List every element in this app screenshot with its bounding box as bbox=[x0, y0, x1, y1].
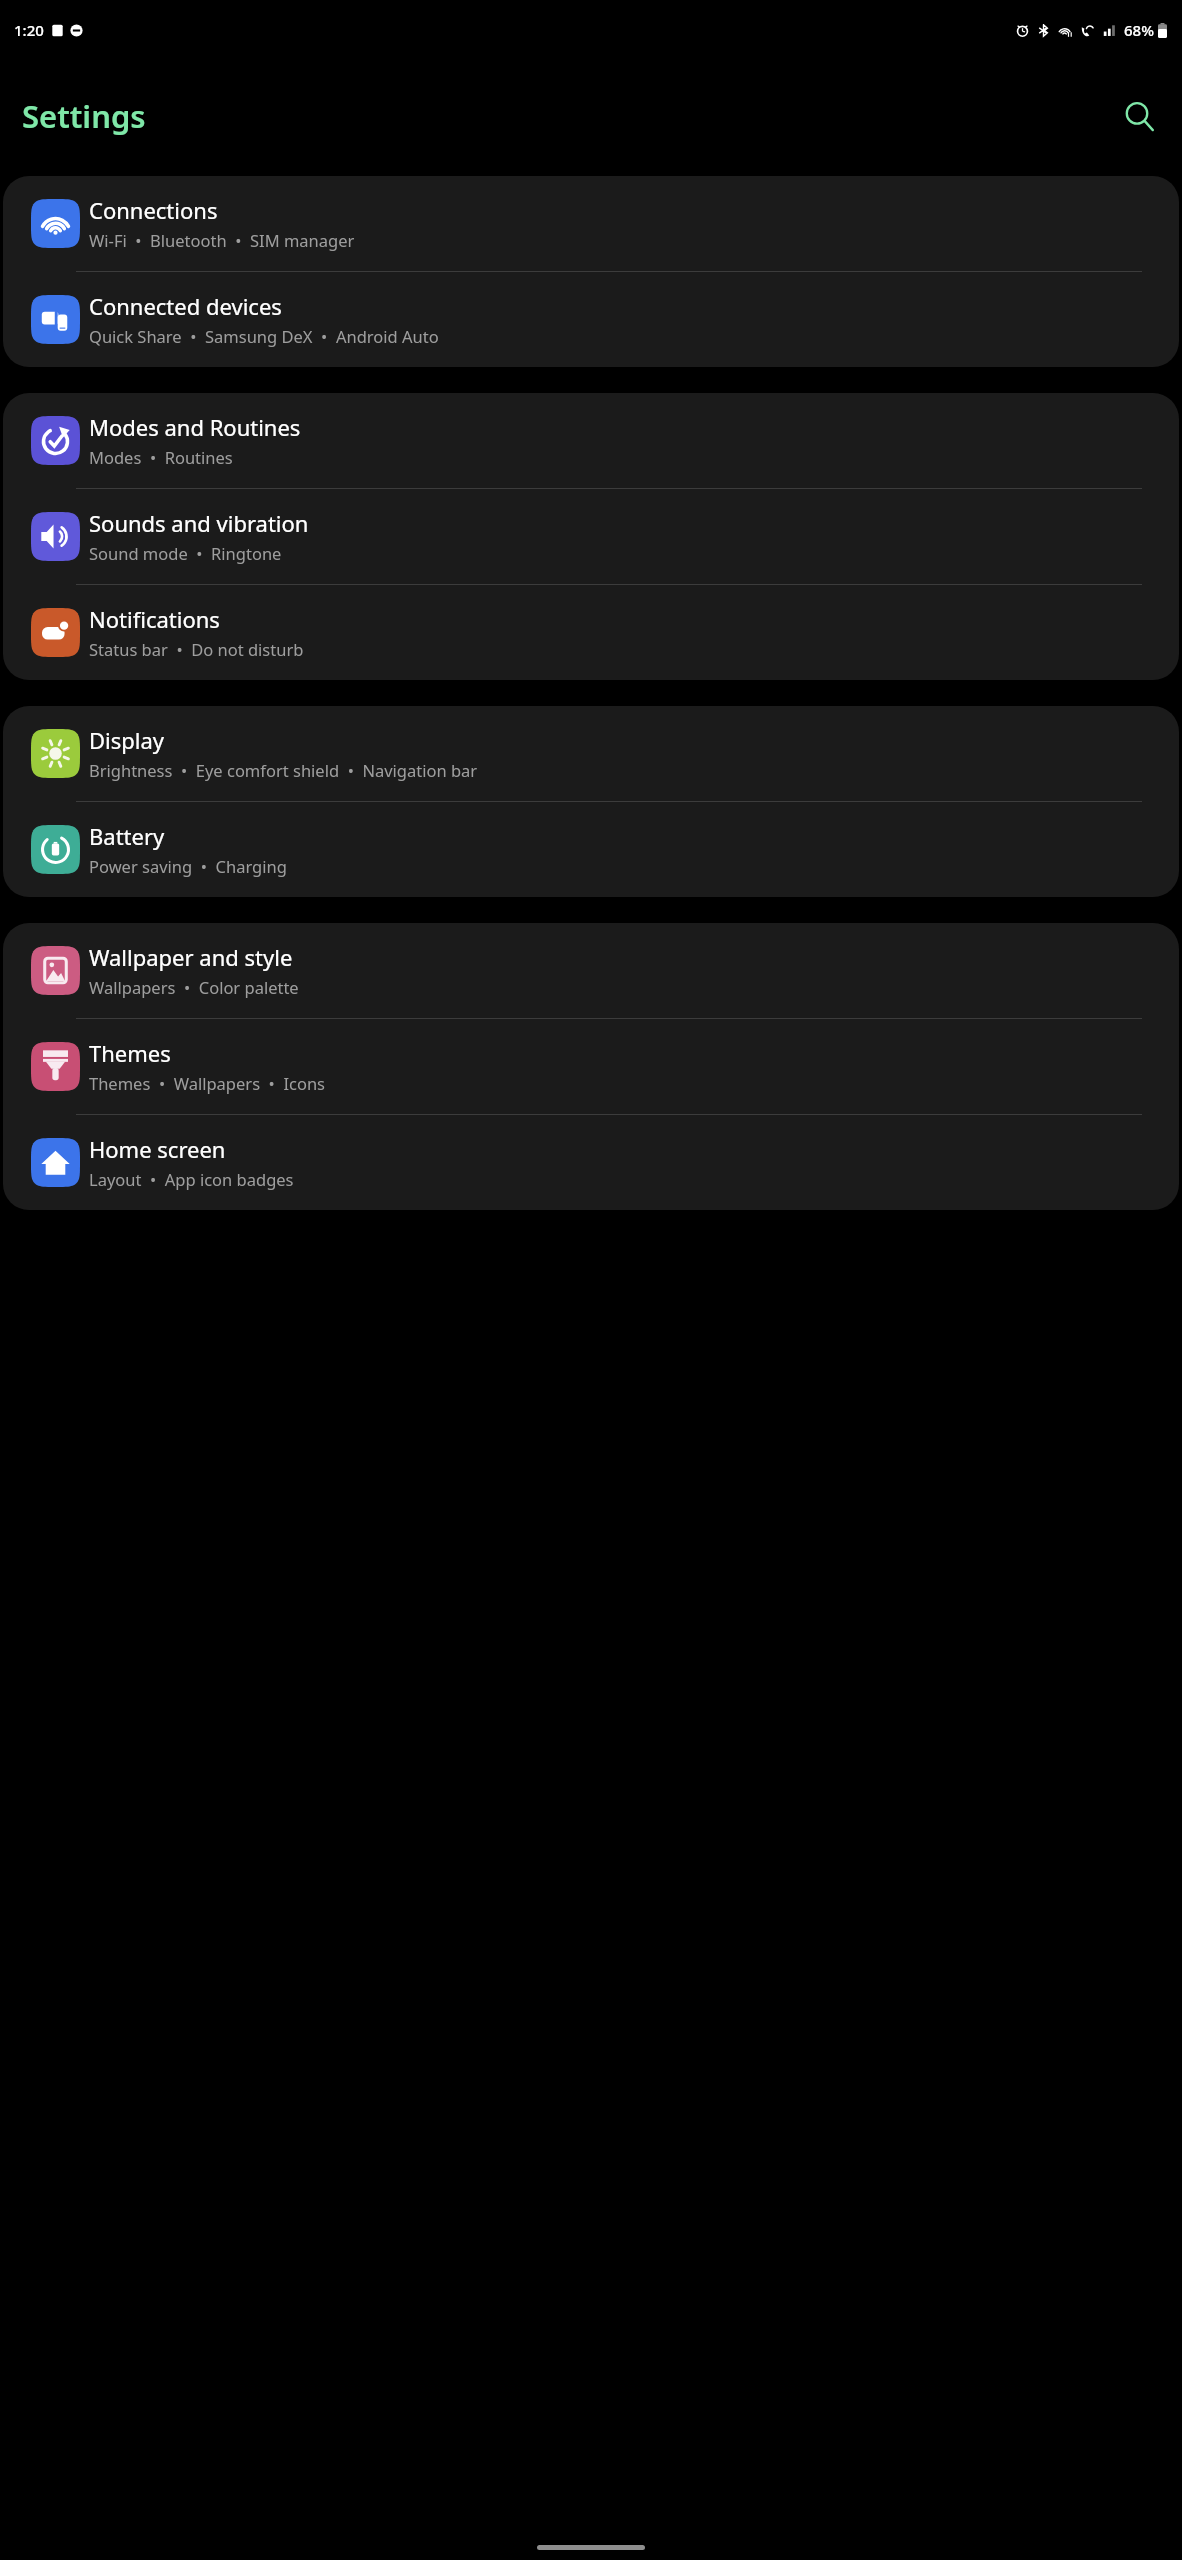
staticText: Themes • Wallpapers • Icons bbox=[89, 1072, 325, 1094]
staticText: Wi-Fi • Bluetooth • SIM manager bbox=[89, 229, 355, 251]
staticText: Home screen bbox=[89, 1134, 226, 1164]
staticText: Layout • App icon badges bbox=[89, 1168, 294, 1190]
staticText: Sounds and vibration bbox=[89, 508, 309, 538]
staticText: Modes • Routines bbox=[89, 446, 233, 468]
button[interactable]: Battery bbox=[3, 802, 1179, 897]
staticText: Settings bbox=[22, 95, 146, 137]
button[interactable]: Sounds and vibration bbox=[3, 489, 1179, 585]
button[interactable]: Connections bbox=[3, 176, 1179, 272]
button[interactable]: Modes and Routines bbox=[3, 393, 1179, 489]
staticText: Display bbox=[89, 725, 165, 755]
staticText: Battery bbox=[89, 821, 165, 851]
button[interactable]: Connected devices bbox=[3, 272, 1179, 367]
button[interactable]: Notifications bbox=[3, 585, 1179, 680]
staticText: Status bar • Do not disturb bbox=[89, 638, 304, 660]
button[interactable]: Wallpaper and style bbox=[3, 923, 1179, 1019]
staticText: Notifications bbox=[89, 604, 220, 634]
staticText: Power saving • Charging bbox=[89, 855, 287, 877]
staticText: Wallpapers • Color palette bbox=[89, 976, 299, 998]
staticText: Themes bbox=[89, 1038, 171, 1068]
button[interactable]: Search bbox=[1116, 93, 1162, 139]
staticText: Connected devices bbox=[89, 291, 282, 321]
button[interactable]: Home screen bbox=[3, 1115, 1179, 1210]
staticText: Quick Share • Samsung DeX • Android Auto bbox=[89, 325, 439, 347]
staticText: 68% bbox=[1124, 20, 1154, 40]
staticText: Wallpaper and style bbox=[89, 942, 293, 972]
staticText: Brightness • Eye comfort shield • Naviga… bbox=[89, 759, 478, 781]
staticText: 1:20 bbox=[14, 20, 44, 40]
staticText: Sound mode • Ringtone bbox=[89, 542, 282, 564]
staticText: Connections bbox=[89, 195, 218, 225]
button[interactable]: Display bbox=[3, 706, 1179, 802]
staticText: Modes and Routines bbox=[89, 412, 301, 442]
button[interactable]: Themes bbox=[3, 1019, 1179, 1115]
